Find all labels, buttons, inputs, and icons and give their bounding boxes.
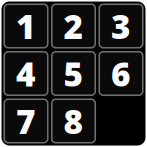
staticText: 7 xyxy=(16,99,36,143)
staticText: 6 xyxy=(111,51,131,96)
button[interactable]: 5 xyxy=(52,52,95,95)
staticText: 3 xyxy=(111,4,131,48)
button[interactable]: 3 xyxy=(99,4,143,48)
button[interactable]: 1 xyxy=(4,4,48,48)
staticText: 4 xyxy=(16,51,36,96)
staticText: 8 xyxy=(63,99,83,143)
button[interactable]: 6 xyxy=(99,52,143,95)
staticText: 5 xyxy=(63,51,83,96)
button[interactable]: 8 xyxy=(52,99,95,143)
button[interactable]: 4 xyxy=(4,52,48,95)
staticText: 2 xyxy=(63,4,83,48)
staticText: 1 xyxy=(16,4,36,48)
button[interactable]: 7 xyxy=(4,99,48,143)
button[interactable]: 2 xyxy=(52,4,95,48)
